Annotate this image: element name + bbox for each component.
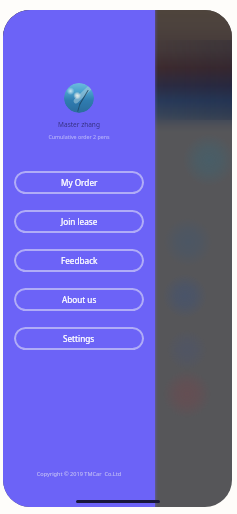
staticText: Copyright © 2019 TMCar Co.Ltd: [3, 470, 155, 478]
staticText: About us: [62, 294, 97, 305]
staticText: Master zhang: [3, 120, 155, 129]
button[interactable]: Profile photo: [64, 83, 94, 113]
staticText: Join lease: [61, 216, 98, 227]
button[interactable]: About us: [14, 288, 144, 311]
button[interactable]: Settings: [14, 327, 144, 350]
staticText: Settings: [63, 333, 95, 344]
staticText: My Order: [61, 177, 98, 188]
staticText: Feedback: [61, 255, 98, 266]
button[interactable]: Join lease: [14, 210, 144, 233]
button[interactable]: Feedback: [14, 249, 144, 272]
button[interactable]: My Order: [14, 171, 144, 194]
staticText: Cumulative order 2 pens: [3, 133, 155, 140]
